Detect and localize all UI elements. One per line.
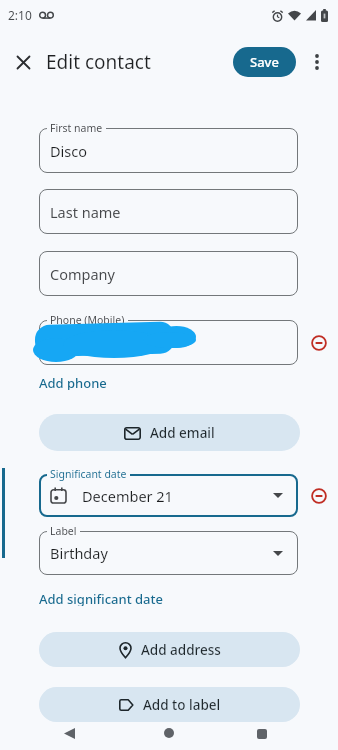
button[interactable] [304,49,330,75]
staticText: Company [50,264,115,284]
staticText: December 21 [82,486,173,506]
button[interactable] [257,729,267,739]
button[interactable]: Add email [39,414,300,451]
button[interactable] [10,49,36,75]
button[interactable]: Birthday [39,531,298,575]
staticText: Add significant date [39,590,163,606]
button[interactable] [39,320,298,365]
staticText: Save [250,53,279,71]
staticText: Add email [150,424,215,442]
button[interactable] [164,728,174,738]
button[interactable]: Add phone [39,374,107,390]
staticText: Disco [50,141,88,161]
button[interactable]: Add significant date [39,590,163,606]
staticText: 2:10 [8,7,32,23]
button[interactable]: Last name [39,189,298,234]
staticText: Phone (Mobile) [50,313,125,327]
button[interactable]: December 21 [39,474,298,517]
staticText: Significant date [50,467,127,481]
staticText: Label [50,524,77,538]
staticText: Last name [50,202,121,222]
staticText: First name [50,121,103,135]
button[interactable]: Company [39,251,298,296]
staticText: Add address [141,641,221,659]
button[interactable]: Save [233,47,296,77]
staticText: Add phone [39,374,107,390]
staticText: Add to label [143,696,221,714]
button[interactable] [64,728,75,739]
button[interactable]: Add address [39,632,300,667]
staticText: Birthday [50,543,108,563]
button[interactable]: Disco [39,128,298,173]
button[interactable]: Add to label [39,687,300,722]
staticText: Edit contact [46,49,151,75]
